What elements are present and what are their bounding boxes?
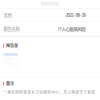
- staticText: 报告单: [6, 42, 18, 48]
- staticText: 其他: [4, 12, 12, 18]
- staticText: 报告名称: [4, 25, 20, 32]
- staticText: 介入心脏病风险: [57, 25, 85, 32]
- staticText: 2021-08-26: [65, 12, 85, 18]
- button[interactable]: Report image: [3, 55, 18, 74]
- staticText: 备注: [6, 80, 14, 86]
- staticText: 一直在的检查单乡卫生服务中心，无上等症于了复查: [3, 89, 95, 95]
- button[interactable]: 其他: [0, 8, 100, 21]
- button[interactable]: 报告名称: [0, 22, 100, 36]
- staticText: 检查报告详情: [41, 2, 59, 6]
